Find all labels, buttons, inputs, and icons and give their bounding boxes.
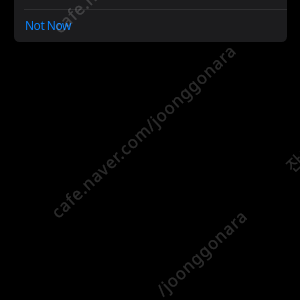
button[interactable]: Not Now — [14, 10, 287, 42]
staticText: /joonggonara — [151, 204, 252, 300]
staticText: 잔여분 — [281, 125, 300, 176]
staticText: cafe.naver.com/joonggonara — [48, 0, 243, 37]
staticText: Not Now — [25, 17, 71, 33]
staticText: cafe.naver.com/joonggonara — [46, 38, 241, 222]
